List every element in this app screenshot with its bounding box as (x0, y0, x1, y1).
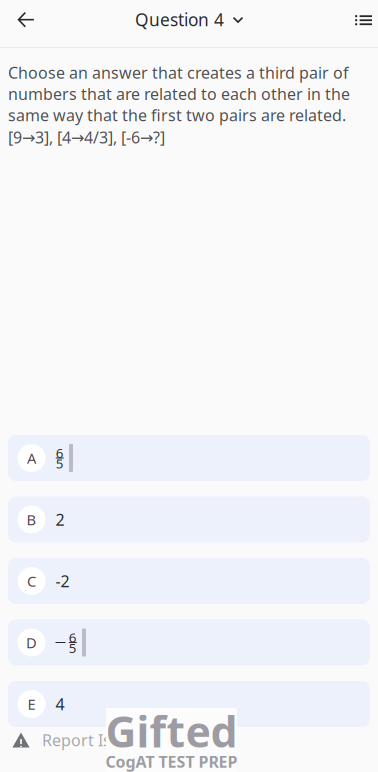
staticText: Gifted (105, 703, 237, 759)
button[interactable]: A (8, 435, 370, 481)
button[interactable]: C (8, 558, 370, 604)
button[interactable]: D (8, 619, 370, 665)
staticText: B (26, 510, 36, 529)
staticText: C (27, 571, 36, 591)
staticText: 6 (56, 444, 64, 462)
button[interactable]: Question 4 (127, 0, 251, 40)
staticText: -2 (55, 570, 69, 592)
button[interactable]: Report Issue (0, 727, 378, 772)
staticText: [9→3], [4→4/3], [-6→?] (8, 127, 165, 148)
staticText: 6 (69, 628, 77, 646)
staticText: Report Issue (42, 729, 138, 751)
staticText: Choose an answer that creates a third pa… (8, 62, 350, 126)
button[interactable]: Back (6, 0, 46, 40)
staticText: A (27, 448, 36, 468)
staticText: E (27, 694, 35, 714)
staticText: 4 (55, 693, 64, 715)
button[interactable]: B (8, 496, 370, 542)
staticText: CogAT TEST PREP (105, 751, 237, 772)
staticText: D (26, 633, 37, 652)
button[interactable]: E (8, 681, 370, 727)
button[interactable]: Question list (352, 0, 378, 40)
staticText: 5 (56, 454, 64, 472)
staticText: 2 (55, 509, 64, 530)
staticText: 5 (69, 639, 77, 657)
staticText: Question 4 (135, 8, 224, 31)
